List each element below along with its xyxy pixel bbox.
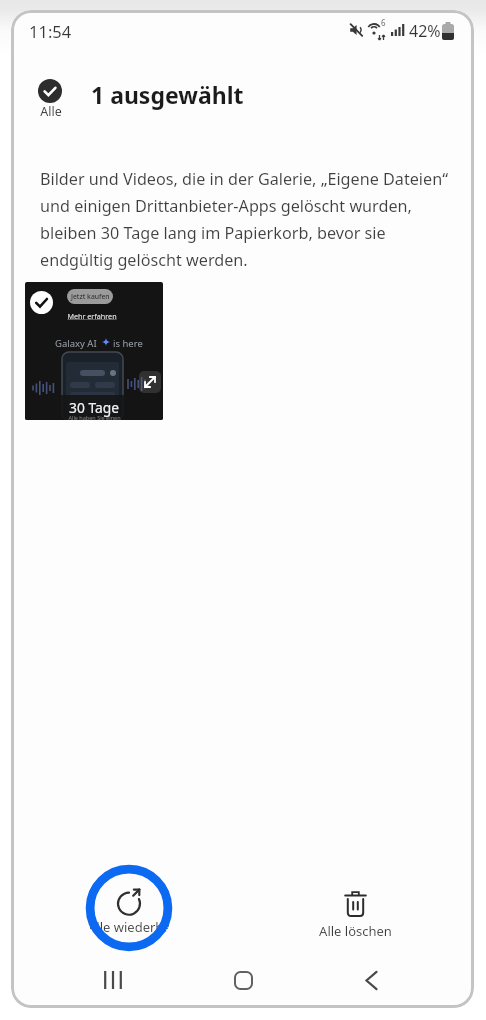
button[interactable]: Jetzt kaufen bbox=[67, 289, 113, 304]
staticText: 11:54 bbox=[29, 20, 72, 42]
button[interactable] bbox=[139, 371, 161, 393]
staticText: Galaxy AI bbox=[55, 337, 97, 350]
staticText: 1 ausgewählt bbox=[91, 79, 244, 110]
staticText: Alle löschen bbox=[319, 922, 392, 940]
button[interactable] bbox=[349, 958, 393, 1002]
staticText: Bilder und Videos, die in der Galerie, „… bbox=[40, 168, 448, 271]
button[interactable]: Alle bbox=[20, 74, 82, 122]
staticText: Alle haben Sie einen bbox=[68, 414, 121, 420]
staticText: 42% bbox=[409, 20, 441, 42]
staticText: Alle wiederherstellen bbox=[88, 918, 173, 936]
button[interactable]: Alle löschen bbox=[305, 878, 406, 950]
button[interactable] bbox=[221, 958, 265, 1002]
staticText: Jetzt kaufen bbox=[71, 292, 110, 301]
staticText: Mehr erfahren bbox=[67, 311, 117, 321]
button[interactable]: Jetzt kaufen bbox=[25, 282, 163, 420]
staticText: 6 bbox=[381, 17, 386, 28]
staticText: 30 Tage bbox=[69, 398, 119, 417]
button[interactable] bbox=[92, 958, 136, 1002]
staticText: Alle bbox=[40, 103, 62, 120]
staticText: is here bbox=[113, 337, 143, 350]
button[interactable]: Alle wiederherstellen bbox=[85, 864, 173, 952]
